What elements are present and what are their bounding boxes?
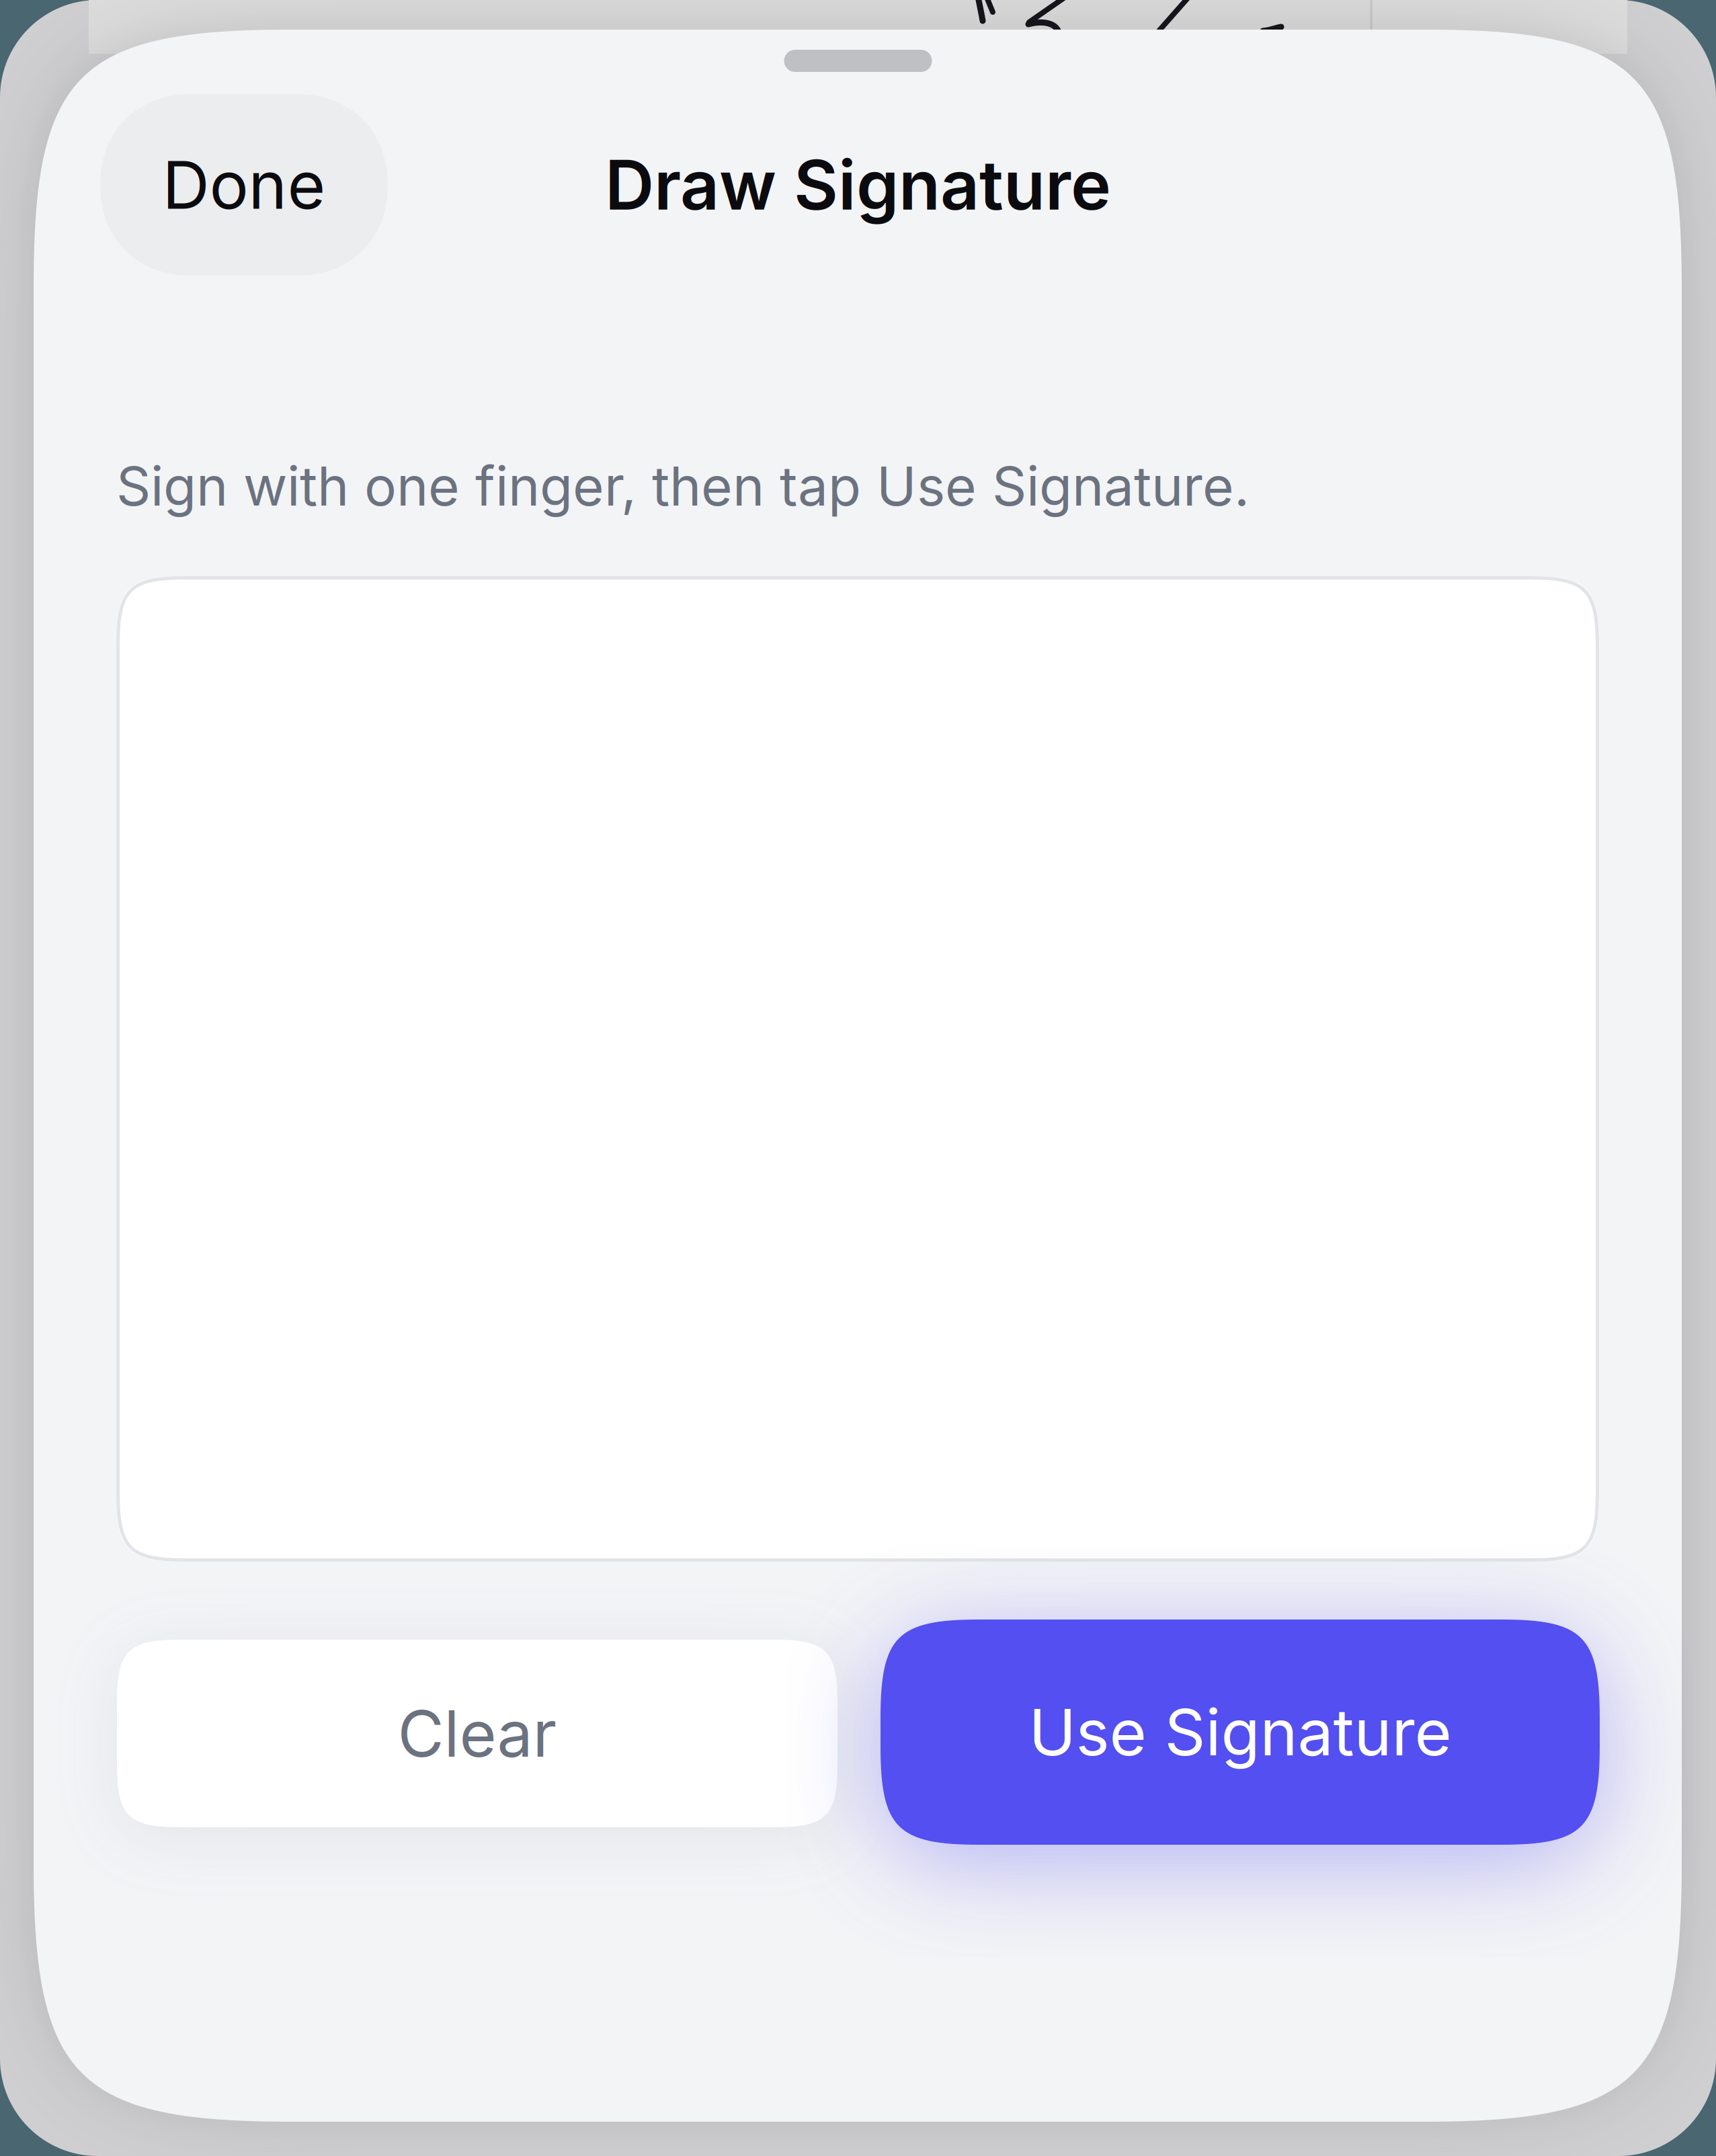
button[interactable]: Done — [100, 94, 388, 276]
staticText: Use Signature — [1029, 1694, 1452, 1771]
button[interactable]: Use Signature — [881, 1620, 1600, 1845]
button[interactable]: Clear — [117, 1640, 837, 1827]
staticText: Clear — [398, 1695, 557, 1772]
staticText: Sign with one finger, then tap Use Signa… — [116, 454, 1250, 519]
staticText: Done — [162, 145, 326, 224]
staticText: Draw Signature — [605, 144, 1111, 226]
